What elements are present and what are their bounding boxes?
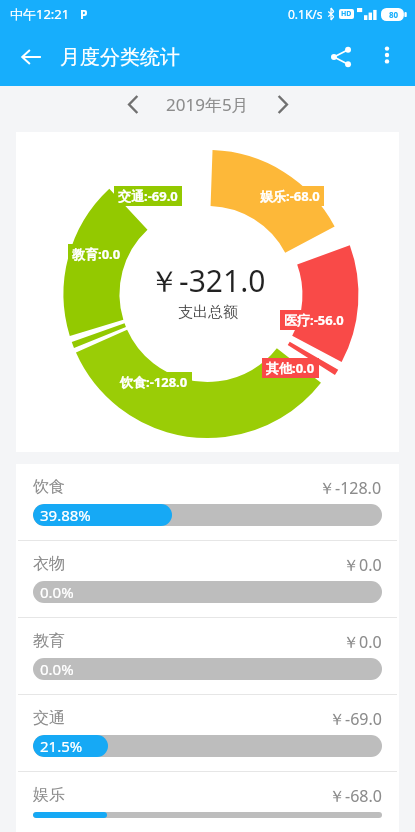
staticText: ￥0.0	[343, 631, 382, 653]
staticText: 月度分类统计	[60, 45, 180, 70]
staticText: 0.1K/s	[288, 6, 323, 22]
staticText: 医疗:-56.0	[284, 311, 344, 329]
button[interactable]: ￥-321.0	[16, 132, 399, 452]
staticText: 80	[389, 9, 399, 20]
staticText: 饮食:-128.0	[120, 373, 188, 391]
button[interactable]: 饮食	[16, 464, 399, 540]
staticText: ￥-321.0	[149, 260, 266, 301]
staticText: 0.0%	[40, 582, 74, 602]
button[interactable]: 教育	[16, 618, 399, 694]
staticText: 中午12:21	[10, 5, 70, 23]
staticText: ￥0.0	[343, 554, 382, 576]
staticText: ￥-69.0	[329, 708, 382, 730]
button[interactable]: Share	[317, 33, 365, 81]
staticText: P	[80, 6, 88, 22]
staticText: 教育	[33, 631, 65, 651]
staticText: 2019年5月	[166, 93, 249, 116]
staticText: 教育:0.0	[72, 245, 121, 263]
staticText: 0.0%	[40, 659, 74, 679]
button[interactable]: Next month	[263, 86, 301, 122]
staticText: 饮食	[33, 477, 65, 497]
button[interactable]: 交通	[16, 695, 399, 771]
staticText: 21.5%	[40, 736, 83, 756]
staticText: HD	[341, 9, 352, 19]
staticText: 衣物	[33, 554, 65, 574]
staticText: 支出总额	[178, 303, 238, 322]
staticText: ￥-128.0	[319, 477, 382, 499]
button[interactable]: 娱乐	[16, 772, 399, 832]
button[interactable]: More options	[365, 33, 409, 77]
button[interactable]: Back	[8, 34, 54, 80]
staticText: ￥-68.0	[329, 785, 382, 807]
staticText: 娱乐:-68.0	[260, 187, 320, 205]
button[interactable]: Previous month	[114, 86, 152, 122]
staticText: 39.88%	[40, 505, 91, 525]
staticText: 交通	[33, 708, 65, 728]
button[interactable]: 衣物	[16, 541, 399, 617]
staticText: 交通:-69.0	[118, 187, 178, 205]
staticText: 娱乐	[33, 785, 65, 805]
staticText: 其他:0.0	[266, 359, 315, 377]
